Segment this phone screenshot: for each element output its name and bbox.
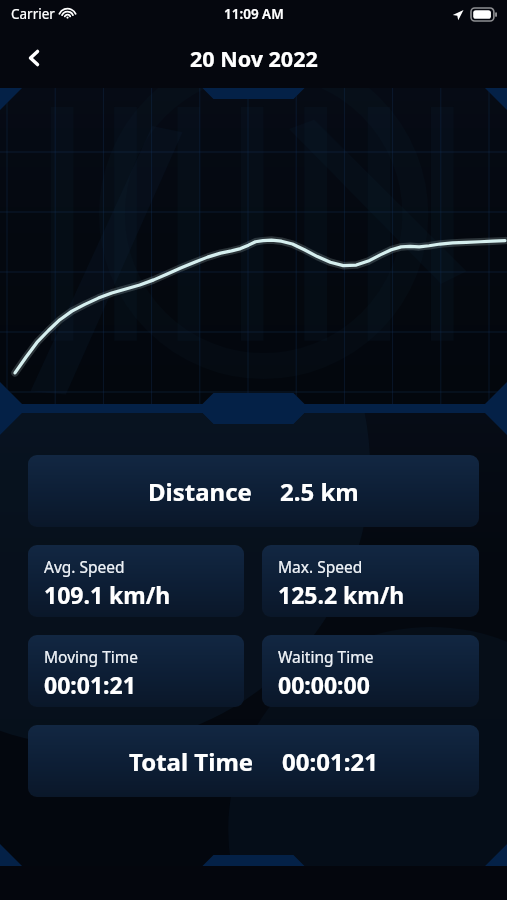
button[interactable]: Max. Speed [262, 545, 479, 617]
staticText: 20 Nov 2022 [190, 44, 318, 73]
staticText: 2.5 km [280, 475, 359, 508]
button[interactable]: Total Time [28, 725, 479, 797]
staticText: 00:01:21 [44, 669, 136, 700]
button[interactable]: Distance [28, 455, 479, 527]
staticText: 125.2 km/h [278, 579, 405, 610]
staticText: 109.1 km/h [44, 579, 171, 610]
staticText: Distance [148, 475, 252, 508]
staticText: 11:09 AM [224, 5, 284, 23]
button[interactable]: Moving Time [28, 635, 244, 707]
staticText: Moving Time [44, 646, 138, 667]
staticText: Total Time [129, 745, 254, 778]
staticText: Avg. Speed [44, 556, 125, 577]
button[interactable]: Waiting Time [262, 635, 479, 707]
button[interactable]: Back [14, 38, 54, 78]
button[interactable]: Avg. Speed [28, 545, 244, 617]
staticText: 00:00:00 [278, 669, 370, 700]
staticText: Max. Speed [278, 556, 363, 577]
staticText: Carrier [11, 5, 55, 23]
staticText: Waiting Time [278, 646, 374, 667]
staticText: 00:01:21 [282, 745, 378, 778]
